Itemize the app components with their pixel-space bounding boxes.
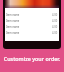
staticText: Item name bbox=[6, 19, 20, 23]
staticText: 4.00 bbox=[52, 31, 58, 35]
staticText: 4.00 bbox=[52, 19, 58, 23]
button[interactable]: Item name bbox=[6, 12, 58, 18]
button[interactable]: Item name bbox=[6, 24, 58, 30]
staticText: Item name bbox=[6, 25, 20, 29]
staticText: Customize your order. bbox=[3, 55, 61, 62]
staticText: Item name bbox=[6, 31, 20, 35]
staticText: 4.00 bbox=[52, 25, 58, 29]
staticText: Item name bbox=[6, 13, 20, 17]
button[interactable]: Item name bbox=[6, 18, 58, 24]
button[interactable]: Item name bbox=[6, 30, 58, 36]
staticText: 4.00 bbox=[52, 13, 58, 17]
